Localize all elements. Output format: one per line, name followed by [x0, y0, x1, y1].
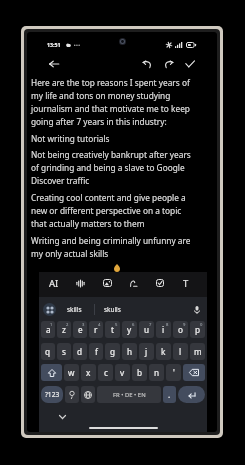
- staticText: 13:51: [47, 41, 61, 48]
- staticText: m: [194, 346, 202, 357]
- button[interactable]: pen: [124, 274, 142, 292]
- staticText: i: [162, 324, 165, 335]
- button[interactable]: m: [190, 343, 205, 360]
- button[interactable]: l: [173, 343, 188, 360]
- button[interactable]: v: [115, 364, 130, 381]
- staticText: z: [62, 324, 66, 335]
- staticText: d: [77, 346, 83, 357]
- staticText: 3: [82, 322, 85, 328]
- staticText: 6: [132, 322, 135, 328]
- button[interactable]: k: [156, 343, 171, 360]
- button[interactable]: Undo: [139, 56, 155, 72]
- staticText: Writing and being criminally unfunny are…: [31, 235, 196, 260]
- button[interactable]: z: [57, 321, 71, 338]
- button[interactable]: Enter: [178, 386, 205, 403]
- button[interactable]: Space: [97, 386, 161, 403]
- button[interactable]: Voice input: [190, 303, 203, 316]
- staticText: a: [46, 324, 51, 335]
- staticText: ': [173, 367, 175, 378]
- button[interactable]: u: [139, 321, 154, 338]
- staticText: FR • DE • EN: [113, 391, 146, 399]
- button[interactable]: h: [122, 343, 137, 360]
- button[interactable]: e: [73, 321, 87, 338]
- button[interactable]: t: [105, 321, 120, 338]
- staticText: skills: [67, 305, 82, 314]
- staticText: Here are the top reasons I spent years o…: [31, 77, 196, 128]
- staticText: k: [161, 346, 166, 357]
- button[interactable]: T: [177, 274, 195, 292]
- button[interactable]: Emoji: [65, 386, 79, 403]
- staticText: T: [183, 277, 189, 290]
- button[interactable]: AI: [45, 274, 63, 292]
- button[interactable]: f: [89, 343, 103, 360]
- staticText: Not writing tutorials: [31, 133, 110, 144]
- button[interactable]: g: [105, 343, 120, 360]
- staticText: r: [94, 324, 98, 335]
- button[interactable]: i: [156, 321, 171, 338]
- staticText: u: [144, 324, 150, 335]
- button[interactable]: x: [81, 364, 96, 381]
- button[interactable]: Symbols: [41, 386, 63, 403]
- button[interactable]: b: [132, 364, 147, 381]
- staticText: p: [195, 324, 201, 335]
- staticText: w: [68, 367, 75, 378]
- button[interactable]: a: [41, 321, 55, 338]
- staticText: c: [104, 367, 108, 378]
- button[interactable]: c: [98, 364, 113, 381]
- button[interactable]: Period: [163, 386, 176, 403]
- staticText: 2: [66, 322, 69, 328]
- button[interactable]: n: [149, 364, 164, 381]
- staticText: 9: [183, 322, 186, 328]
- button[interactable]: Shift: [41, 364, 62, 381]
- staticText: g: [110, 346, 116, 357]
- staticText: AI: [49, 277, 59, 290]
- staticText: n: [154, 367, 160, 378]
- staticText: skulls: [104, 305, 121, 314]
- staticText: .: [168, 389, 171, 400]
- button[interactable]: p: [190, 321, 205, 338]
- button[interactable]: Hide keyboard: [56, 411, 68, 423]
- button[interactable]: Back: [46, 56, 62, 72]
- button[interactable]: image: [98, 274, 116, 292]
- staticText: Not being creatively bankrupt after year…: [31, 149, 196, 187]
- staticText: l: [179, 346, 182, 357]
- button[interactable]: Redo: [161, 56, 177, 72]
- staticText: o: [178, 324, 183, 335]
- staticText: ?123: [45, 390, 60, 399]
- staticText: 8: [166, 322, 169, 328]
- button[interactable]: y: [122, 321, 137, 338]
- button[interactable]: r: [89, 321, 103, 338]
- button[interactable]: Done: [182, 56, 198, 72]
- staticText: 5: [115, 322, 118, 328]
- button[interactable]: check: [151, 274, 169, 292]
- button[interactable]: skulls: [104, 305, 121, 314]
- button[interactable]: w: [64, 364, 79, 381]
- staticText: t: [111, 324, 114, 335]
- staticText: h: [127, 346, 133, 357]
- button[interactable]: Backspace: [183, 364, 205, 381]
- staticText: y: [127, 324, 132, 335]
- button[interactable]: Language: [81, 386, 95, 403]
- staticText: v: [120, 367, 125, 378]
- button[interactable]: wave: [71, 274, 89, 292]
- button[interactable]: o: [173, 321, 188, 338]
- staticText: q: [45, 346, 51, 357]
- staticText: 0: [200, 322, 203, 328]
- staticText: f: [95, 346, 98, 357]
- button[interactable]: Keyboard modes: [43, 303, 56, 316]
- button[interactable]: q: [41, 343, 55, 360]
- staticText: 4: [98, 322, 101, 328]
- staticText: x: [86, 367, 91, 378]
- staticText: Creating cool content and give people a …: [31, 192, 196, 230]
- button[interactable]: d: [73, 343, 87, 360]
- button[interactable]: skills: [67, 305, 82, 314]
- button[interactable]: j: [139, 343, 154, 360]
- button[interactable]: ': [166, 364, 181, 381]
- staticText: b: [137, 367, 143, 378]
- button[interactable]: s: [57, 343, 71, 360]
- staticText: s: [62, 346, 66, 357]
- staticText: 1: [50, 322, 53, 328]
- staticText: 7: [149, 322, 152, 328]
- staticText: j: [145, 346, 148, 357]
- staticText: e: [78, 324, 83, 335]
